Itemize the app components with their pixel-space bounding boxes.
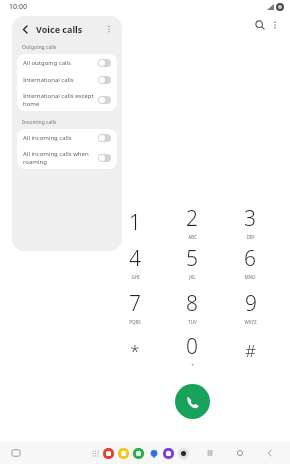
staticText: 1 [129, 208, 141, 237]
staticText: Voice calls [36, 23, 83, 35]
staticText: 0 [186, 332, 198, 361]
staticText: 9 [245, 289, 257, 318]
staticText: ABC [188, 234, 197, 240]
button[interactable]: All incoming calls when roaming [17, 146, 117, 169]
staticText: 8 [186, 289, 198, 318]
staticText: Outgoing calls [22, 44, 57, 51]
button[interactable]: 6 [226, 243, 274, 281]
button[interactable]: # [226, 331, 274, 369]
button[interactable]: 4 [111, 243, 159, 281]
button[interactable]: 0 [168, 331, 216, 369]
staticText: 7 [129, 289, 141, 318]
button[interactable]: Back [264, 447, 276, 459]
staticText: GHI [131, 274, 140, 280]
button[interactable]: International calls [17, 71, 117, 88]
button[interactable]: Recents [204, 447, 216, 459]
button[interactable]: All incoming calls [17, 129, 117, 146]
button[interactable]: Navigate up [18, 22, 32, 36]
button[interactable] [118, 448, 129, 459]
staticText: 3 [244, 204, 256, 233]
button[interactable] [103, 448, 114, 459]
staticText: 5 [186, 244, 198, 273]
staticText: International calls except home [23, 92, 94, 108]
button[interactable]: * [111, 331, 159, 369]
staticText: All incoming calls when roaming [23, 150, 94, 166]
button[interactable]: More options [102, 22, 116, 36]
staticText: 10:00 [9, 2, 27, 12]
button[interactable]: 3 [226, 203, 274, 241]
button[interactable]: Keyboard [10, 447, 22, 459]
button[interactable]: 8 [168, 288, 216, 326]
staticText: * [130, 339, 140, 362]
staticText: WXYZ [244, 319, 257, 325]
button[interactable]: More options [265, 15, 284, 34]
button[interactable] [163, 448, 174, 459]
button[interactable]: 9 [226, 288, 274, 326]
staticText: PQRS [129, 319, 141, 325]
staticText: # [245, 339, 256, 362]
staticText: Incoming calls [22, 119, 57, 126]
staticText: TUV [188, 319, 197, 325]
staticText: All outgoing calls [23, 59, 94, 67]
button[interactable] [178, 448, 189, 459]
button[interactable] [133, 448, 144, 459]
staticText: JKL [189, 274, 196, 280]
button[interactable]: Search [250, 15, 269, 34]
button[interactable]: 2 [168, 203, 216, 241]
button[interactable]: All outgoing calls [17, 54, 117, 71]
button[interactable]: 7 [111, 288, 159, 326]
button[interactable]: Call [175, 384, 210, 419]
button[interactable]: Home [234, 447, 246, 459]
staticText: International calls [23, 76, 94, 84]
button[interactable]: 5 [168, 243, 216, 281]
staticText: 2 [186, 204, 198, 233]
staticText: MNO [244, 274, 256, 280]
staticText: 6 [244, 244, 256, 273]
staticText: All incoming calls [23, 134, 94, 142]
button[interactable]: 1 [111, 203, 159, 241]
button[interactable]: International calls except home [17, 88, 117, 111]
staticText: DEF [246, 234, 255, 240]
staticText: 4 [129, 244, 141, 273]
staticText: + [191, 362, 194, 368]
